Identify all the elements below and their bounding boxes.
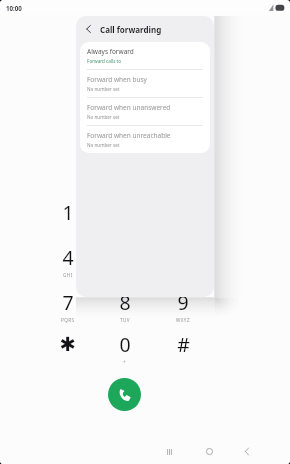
staticText: 9 bbox=[177, 289, 189, 315]
button[interactable]: 7 bbox=[39, 289, 96, 331]
staticText: PQRS bbox=[61, 317, 75, 323]
button[interactable]: # bbox=[154, 331, 212, 373]
button[interactable]: 4 bbox=[39, 244, 96, 286]
staticText: 8 bbox=[119, 289, 131, 315]
button[interactable]: 9 bbox=[154, 289, 212, 331]
button[interactable]: 0 bbox=[96, 331, 154, 373]
staticText: WXYZ bbox=[176, 317, 190, 323]
staticText: # bbox=[177, 331, 190, 357]
staticText: 1 bbox=[62, 199, 74, 225]
staticText: 0 bbox=[119, 331, 131, 357]
staticText: + bbox=[123, 359, 127, 365]
button[interactable]: 8 bbox=[96, 289, 154, 331]
button[interactable]: ✱ bbox=[39, 331, 96, 373]
button[interactable]: Home bbox=[200, 442, 219, 461]
staticText: Forward when unanswered bbox=[87, 103, 171, 112]
button[interactable]: 1 bbox=[39, 199, 96, 241]
staticText: TUV bbox=[120, 317, 131, 323]
staticText: 4 bbox=[62, 244, 74, 270]
button[interactable]: Forward when busy bbox=[80, 69, 210, 97]
staticText: No number set bbox=[87, 114, 120, 120]
button[interactable]: Recent apps bbox=[160, 442, 179, 461]
button[interactable]: Call bbox=[108, 378, 141, 411]
staticText: No number set bbox=[87, 86, 120, 92]
staticText: No number set bbox=[87, 142, 120, 148]
staticText: Call forwarding bbox=[100, 24, 162, 35]
button[interactable]: Back bbox=[237, 442, 256, 461]
staticText: Forward when busy bbox=[87, 75, 147, 84]
staticText: Forward calls to bbox=[87, 58, 122, 64]
button[interactable]: Forward when unanswered bbox=[80, 97, 210, 125]
staticText: GHI bbox=[63, 272, 73, 278]
button[interactable]: Back bbox=[81, 22, 95, 36]
staticText: Forward when unreachable bbox=[87, 131, 171, 140]
staticText: 7 bbox=[62, 289, 74, 315]
staticText: 10:00 bbox=[6, 4, 22, 12]
button[interactable]: Always forward bbox=[80, 42, 210, 69]
button[interactable]: Forward when unreachable bbox=[80, 125, 210, 153]
staticText: Always forward bbox=[87, 47, 134, 56]
staticText: ✱ bbox=[59, 333, 76, 356]
